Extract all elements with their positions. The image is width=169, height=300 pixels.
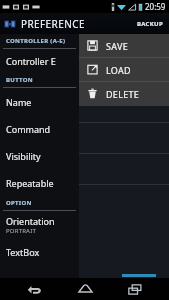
- staticText: CONTROLLER (A-E): [6, 37, 66, 45]
- staticText: Name: [6, 96, 32, 108]
- button[interactable]: Home: [68, 278, 102, 300]
- staticText: OPTION: [6, 199, 32, 207]
- staticText: PREFERENCE: [21, 17, 85, 31]
- staticText: Controller E: [6, 55, 56, 67]
- button[interactable]: DELETE: [79, 82, 169, 105]
- staticText: BUTTON: [6, 76, 33, 84]
- button[interactable]: TextBox: [0, 238, 79, 265]
- staticText: Command: [6, 123, 51, 135]
- button[interactable]: Controller E: [0, 49, 79, 73]
- staticText: Orientation: [6, 215, 55, 227]
- staticText: LOAD: [106, 64, 131, 76]
- button[interactable]: Command: [0, 115, 79, 142]
- staticText: 20:59: [145, 1, 166, 12]
- staticText: Visibility: [6, 150, 41, 162]
- staticText: BACKUP: [137, 20, 163, 28]
- button[interactable]: Name: [0, 88, 79, 115]
- button[interactable]: SAVE: [79, 34, 169, 57]
- staticText: TextBox: [6, 246, 40, 258]
- button[interactable]: App icon: [4, 17, 85, 31]
- staticText: DELETE: [106, 88, 140, 100]
- staticText: SAVE: [106, 40, 128, 52]
- button[interactable]: BACKUP: [131, 13, 169, 34]
- button[interactable]: Recent apps: [118, 278, 152, 300]
- staticText: PORTRAIT: [6, 227, 36, 235]
- button[interactable]: Repeatable: [0, 169, 79, 196]
- button[interactable]: Orientation: [0, 211, 79, 238]
- button[interactable]: LOAD: [79, 58, 169, 81]
- button[interactable]: Back: [17, 278, 51, 300]
- staticText: Repeatable: [6, 177, 54, 189]
- button[interactable]: Visibility: [0, 142, 79, 169]
